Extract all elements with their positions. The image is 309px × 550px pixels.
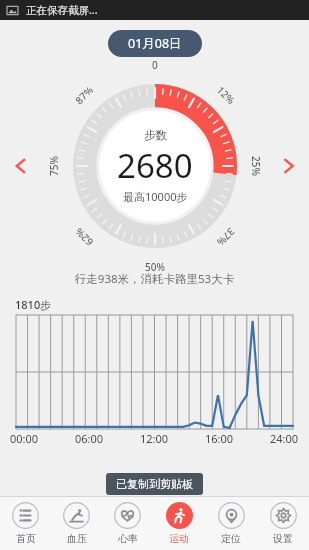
staticText: 正在保存截屏... xyxy=(26,3,98,17)
button[interactable]: Previous day xyxy=(6,151,36,181)
button[interactable]: 心率 xyxy=(102,497,153,550)
button[interactable]: Next day xyxy=(273,151,303,181)
staticText: 首页 xyxy=(16,532,36,545)
button[interactable]: 血压 xyxy=(51,497,102,550)
button[interactable]: 设置 xyxy=(257,497,309,550)
staticText: 24:00 xyxy=(270,431,299,446)
staticText: 87% xyxy=(72,83,96,107)
staticText: 行走938米，消耗卡路里53大卡 xyxy=(0,271,309,287)
staticText: 设置 xyxy=(273,532,293,545)
staticText: 已复制到剪贴板 xyxy=(116,477,193,491)
staticText: 25% xyxy=(249,156,263,176)
staticText: 00:00 xyxy=(10,431,39,446)
staticText: 1810步 xyxy=(15,297,52,312)
staticText: 12% xyxy=(214,83,238,107)
staticText: 步数 xyxy=(144,128,167,142)
staticText: 心率 xyxy=(118,532,138,545)
staticText: 最高10000步 xyxy=(123,189,188,204)
button[interactable]: 定位 xyxy=(205,497,257,550)
staticText: 75% xyxy=(47,156,61,176)
button[interactable]: 首页 xyxy=(0,497,51,550)
button[interactable]: 运动 xyxy=(153,497,205,550)
staticText: 06:00 xyxy=(75,431,104,446)
staticText: 血压 xyxy=(67,532,87,545)
staticText: 01月08日 xyxy=(128,35,182,52)
staticText: 定位 xyxy=(221,532,241,545)
staticText: 运动 xyxy=(169,532,189,545)
staticText: 50% xyxy=(145,260,165,274)
staticText: 12:00 xyxy=(140,431,169,446)
staticText: 62% xyxy=(72,225,96,249)
staticText: 37% xyxy=(214,225,238,249)
staticText: 16:00 xyxy=(205,431,234,446)
button[interactable]: 01月08日 xyxy=(108,30,202,57)
staticText: 0 xyxy=(152,58,158,72)
staticText: 2680 xyxy=(117,143,193,188)
